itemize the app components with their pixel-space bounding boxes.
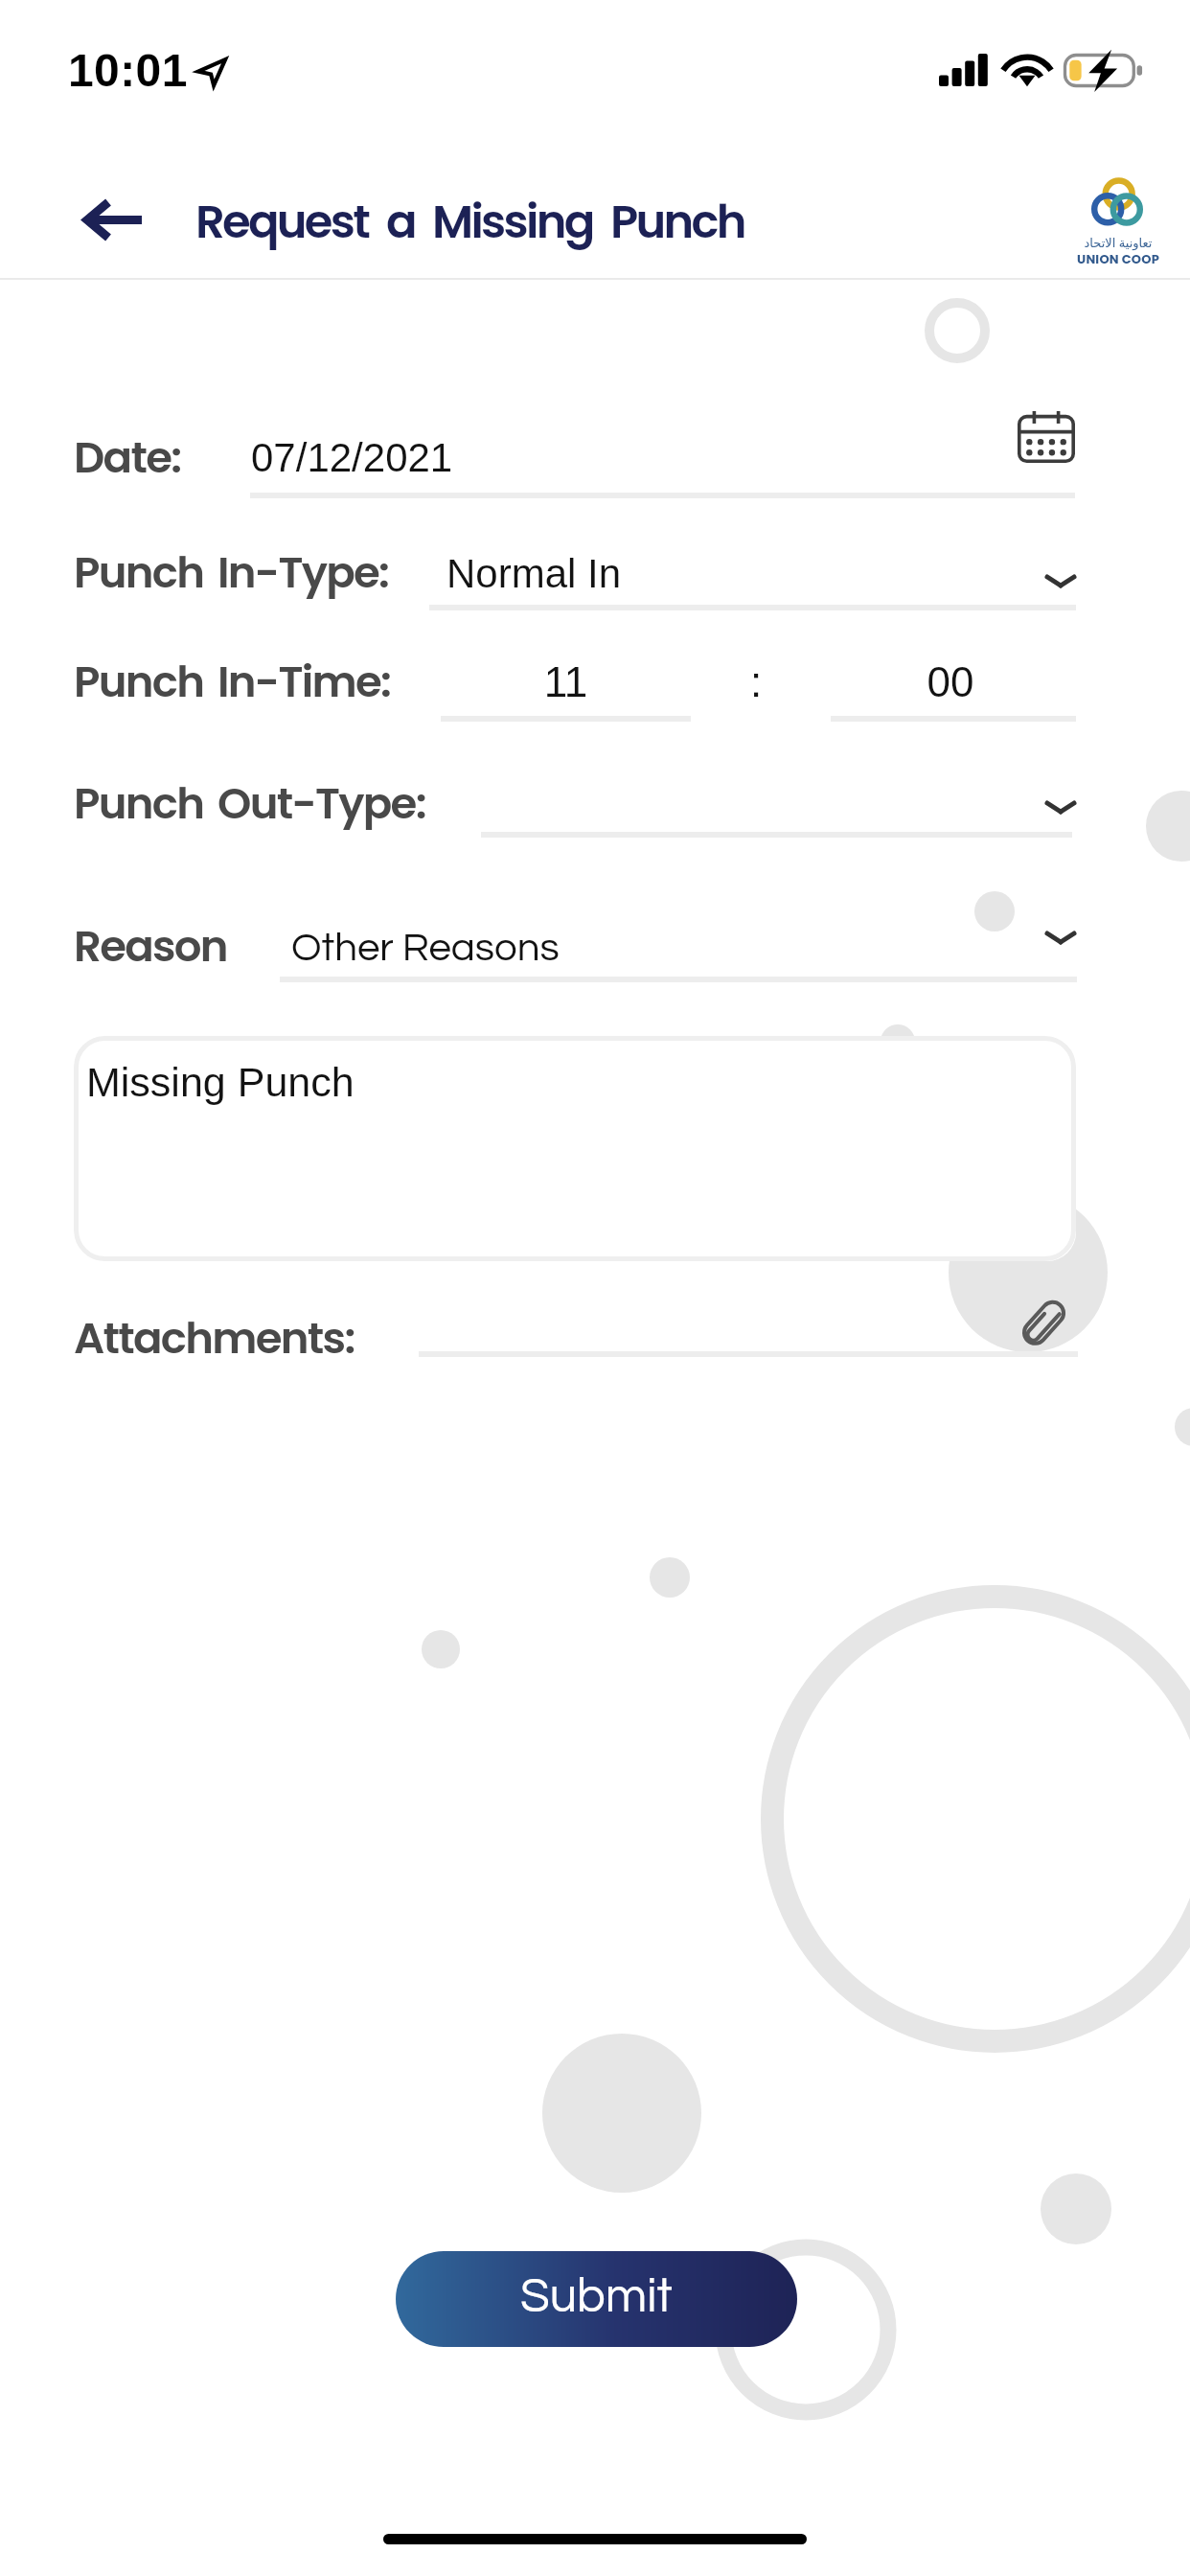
staticText: Out-Type: (217, 773, 425, 834)
staticText: Punch (74, 652, 204, 712)
staticText: UNION COOP (1061, 250, 1176, 267)
staticText: Punch (74, 773, 204, 834)
staticText: a (386, 190, 415, 254)
staticText: 11 (441, 658, 691, 705)
staticText: Missing Punch (86, 1059, 355, 1105)
staticText: Request (195, 190, 369, 254)
button[interactable]: Missing Punch (74, 1036, 1076, 1261)
staticText: 07/12/2021 (251, 435, 453, 480)
staticText: 10:01 (68, 45, 188, 97)
staticText: Other Reasons (291, 928, 560, 969)
staticText: In-Type: (217, 542, 389, 603)
staticText: Punch (74, 542, 204, 603)
staticText: Attachments: (74, 1308, 355, 1368)
staticText: In-Time: (217, 652, 391, 712)
staticText: Submit (520, 2272, 673, 2322)
button[interactable]: Back (73, 180, 155, 259)
staticText: تعاونية الاتحاد (1061, 234, 1176, 251)
staticText: Missing (432, 190, 593, 254)
button[interactable]: Submit (396, 2251, 797, 2347)
staticText: Normal In (446, 551, 622, 596)
staticText: Punch (610, 190, 744, 254)
staticText: 00 (828, 658, 1073, 705)
button[interactable]: Pick date (1002, 395, 1090, 479)
staticText: Reason (74, 916, 227, 977)
button[interactable]: Union Coop (1061, 174, 1176, 266)
button[interactable]: Add attachment (993, 1275, 1092, 1374)
staticText: : (723, 658, 789, 705)
staticText: Date: (74, 427, 181, 488)
